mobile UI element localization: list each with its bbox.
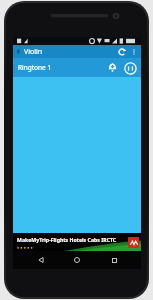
- staticText: Violin: [24, 47, 43, 57]
- button[interactable]: Recent apps: [105, 251, 123, 269]
- button[interactable]: Ringtone 1: [13, 58, 141, 77]
- button[interactable]: Back: [32, 251, 50, 269]
- button[interactable]: Home: [68, 251, 86, 269]
- staticText: MakeMyTrip-Flights Hotels Cabs IRCTC Rai…: [17, 236, 129, 243]
- button[interactable]: Advertisement: [13, 233, 141, 251]
- button[interactable]: More options: [128, 46, 139, 57]
- button[interactable]: Set as ringtone: [104, 59, 121, 76]
- staticText: Ringtone 1: [18, 63, 52, 72]
- button[interactable]: Pause: [121, 59, 139, 77]
- button[interactable]: Refresh: [115, 45, 128, 58]
